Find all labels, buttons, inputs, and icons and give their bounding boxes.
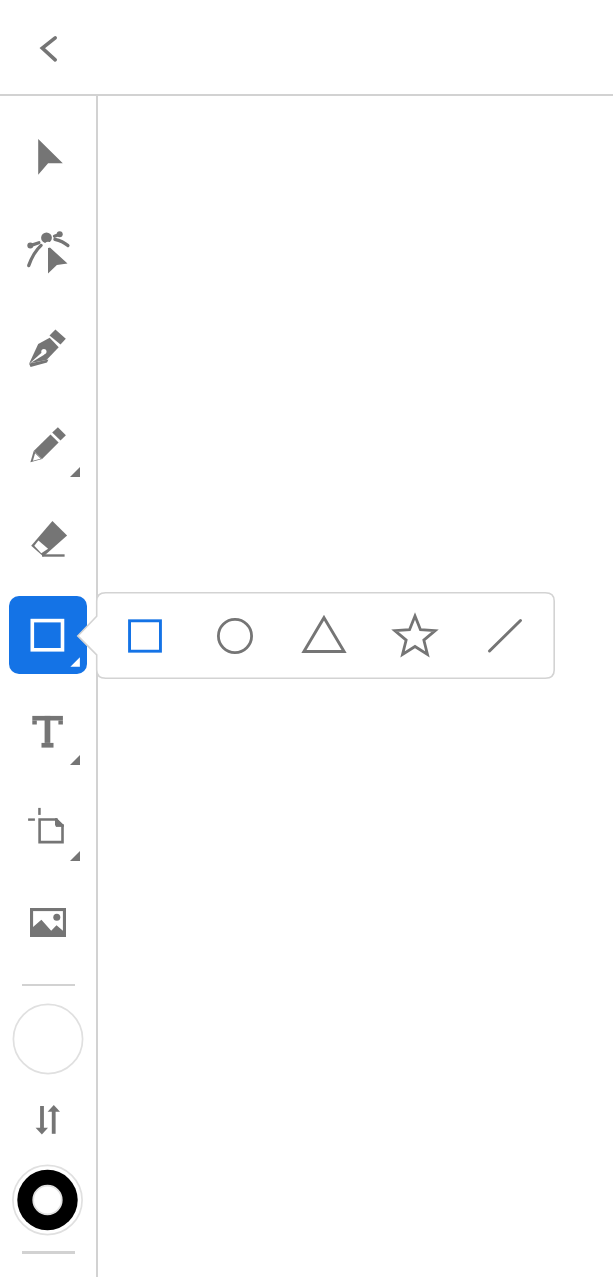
button[interactable]: Select tool [9, 118, 87, 196]
button[interactable]: Stroke colour [10, 1162, 86, 1238]
button[interactable]: Back [18, 18, 78, 78]
button[interactable]: Star [393, 614, 437, 658]
button[interactable]: Insert image [9, 883, 87, 961]
button[interactable]: Rectangle [123, 614, 167, 658]
button[interactable]: Fill colour [10, 1001, 86, 1077]
button[interactable]: Ellipse [213, 614, 257, 658]
button[interactable]: Eraser tool [9, 501, 87, 579]
button[interactable]: Node edit tool [9, 212, 87, 290]
button[interactable]: Triangle [302, 614, 346, 658]
button[interactable]: Shape tool, selected [9, 596, 87, 674]
button[interactable]: Insert object tool [9, 790, 87, 868]
button[interactable]: Line [482, 614, 526, 658]
button[interactable]: Swap fill and stroke colours [24, 1100, 70, 1146]
button[interactable]: Text tool [9, 694, 87, 772]
button[interactable]: Pen tool [9, 309, 87, 387]
button[interactable]: Pencil tool [9, 406, 87, 484]
